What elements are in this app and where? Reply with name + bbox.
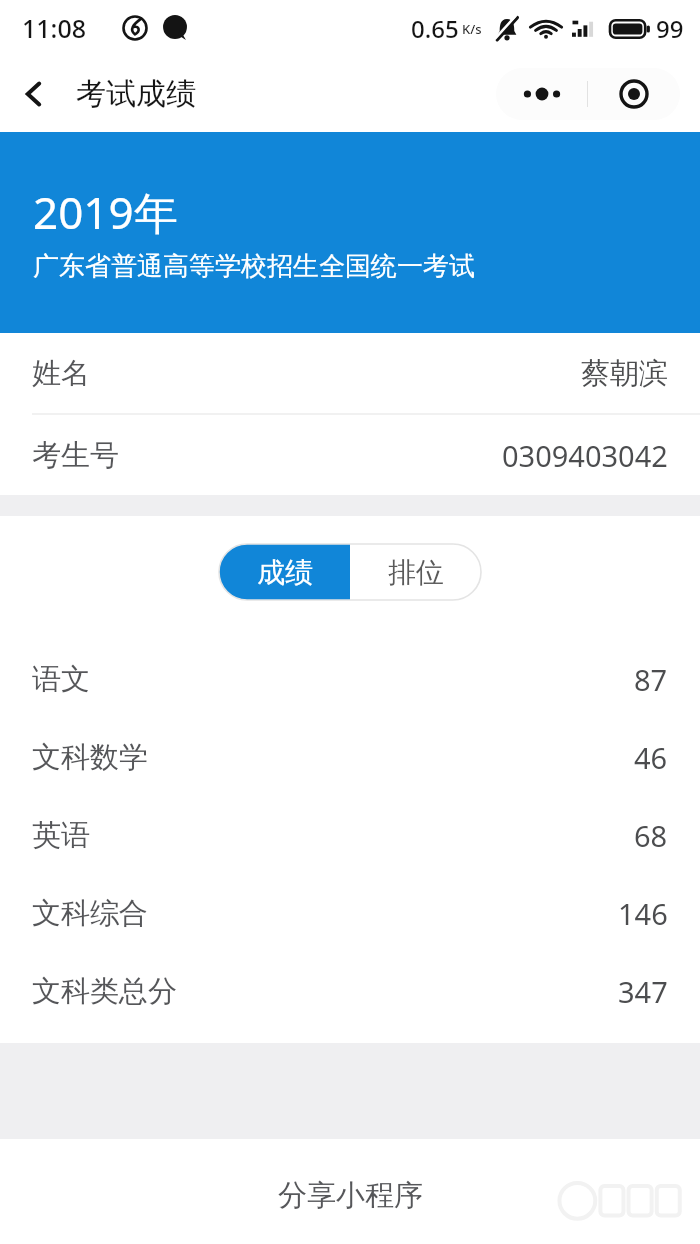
button[interactable]: 英语 xyxy=(0,796,700,874)
button[interactable]: Close mini program xyxy=(588,68,680,120)
staticText: 0309403042 xyxy=(502,436,668,475)
staticText: 0.65 xyxy=(411,12,459,45)
staticText: 语文 xyxy=(32,661,90,698)
button[interactable]: 成绩 xyxy=(219,544,350,600)
button[interactable]: 文科类总分 xyxy=(0,952,700,1030)
button[interactable]: 分享小程序 xyxy=(254,1169,447,1222)
button[interactable]: 考试成绩 xyxy=(76,75,196,113)
staticText: 姓名 xyxy=(32,355,90,392)
staticText: 广东省普通高等学校招生全国统一考试 xyxy=(33,250,475,283)
staticText: 英语 xyxy=(32,817,90,854)
button[interactable]: More xyxy=(496,68,587,120)
staticText: 68 xyxy=(634,816,668,855)
button[interactable]: 排位 xyxy=(350,544,481,600)
button[interactable]: 文科数学 xyxy=(0,718,700,796)
staticText: 46 xyxy=(634,738,668,777)
staticText: 文科类总分 xyxy=(32,973,177,1010)
button[interactable]: 姓名 xyxy=(0,333,700,413)
staticText: 99 xyxy=(656,12,684,45)
staticText: 文科综合 xyxy=(32,895,148,932)
button[interactable]: 文科综合 xyxy=(0,874,700,952)
staticText: 成绩 xyxy=(257,555,313,590)
staticText: 2019年 xyxy=(33,182,178,242)
staticText: 考生号 xyxy=(32,437,119,474)
staticText: 146 xyxy=(618,894,668,933)
staticText: 分享小程序 xyxy=(278,1177,423,1214)
staticText: 11:08 xyxy=(22,11,87,45)
staticText: 87 xyxy=(634,660,668,699)
staticText: 347 xyxy=(618,972,668,1011)
staticText: K/s xyxy=(462,20,482,38)
staticText: 文科数学 xyxy=(32,739,148,776)
button[interactable]: 语文 xyxy=(0,640,700,718)
staticText: 排位 xyxy=(388,555,444,590)
button[interactable]: 考生号 xyxy=(0,415,700,495)
staticText: 蔡朝滨 xyxy=(581,355,668,392)
button[interactable]: Back xyxy=(12,72,56,116)
